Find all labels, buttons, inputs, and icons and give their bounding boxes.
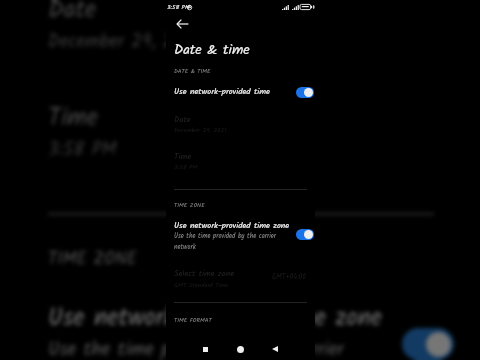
staticText: TIME ZONE [48,246,137,274]
button[interactable] [25,0,457,68]
button[interactable]: Toggle [296,87,314,98]
staticText: TIME FORMAT [174,316,212,326]
button[interactable]: Back [168,14,196,34]
staticText: Use network-provided time [174,85,270,99]
staticText: Use network-provided time zone [48,299,382,338]
staticText: Select time zone [174,267,234,281]
staticText: December 29, 2021 [48,27,200,57]
staticText: TIME ZONE [174,201,205,211]
staticText: 3:58 PM [167,2,190,12]
button[interactable]: Recents [195,339,215,359]
staticText: 3:58 PM [48,135,117,165]
button[interactable] [166,265,315,294]
staticText: DATE & TIME [174,67,211,77]
button[interactable]: Home [230,339,250,359]
button[interactable] [25,91,457,175]
staticText: Date & time [174,39,250,62]
staticText: Use network-provided time zone [174,219,290,233]
button[interactable] [166,216,315,256]
staticText: Time [48,99,98,138]
staticText: Date [174,113,191,127]
staticText: December 29, 2021 [174,125,227,135]
staticText: Date [48,0,97,30]
staticText: GMT+04:00 [272,272,306,283]
button[interactable]: Toggle [402,328,454,360]
staticText: Use the time provided by the carrier net… [174,231,280,253]
button[interactable] [25,291,457,360]
staticText: Use the time provided by the carrier net… [48,335,355,360]
button[interactable]: Back [265,339,285,359]
staticText: GMT Standard Time [174,280,229,290]
staticText: Time [174,150,192,164]
staticText: 3:58 PM [174,162,198,172]
button[interactable]: Toggle [296,229,314,240]
button[interactable] [166,82,315,101]
